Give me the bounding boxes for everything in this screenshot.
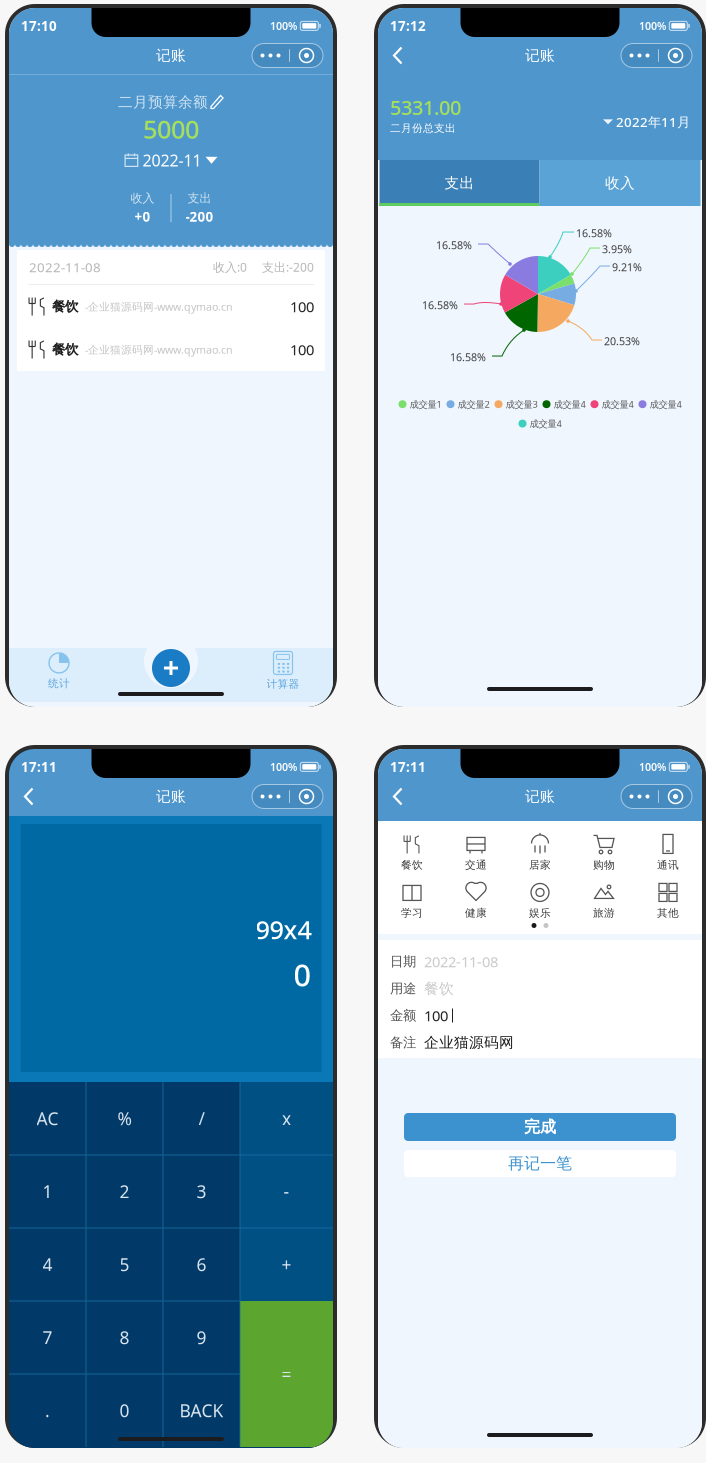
button[interactable]: 2 [86, 1155, 163, 1228]
staticText: 2022-11-08 [424, 952, 498, 971]
staticText: 17:11 [390, 758, 426, 776]
button[interactable]: Back [378, 37, 418, 74]
staticText: 成交量4 [529, 417, 561, 430]
staticText: 100 [290, 340, 314, 359]
staticText: 二月份总支出 [390, 122, 456, 135]
staticText: 收入:0 [213, 259, 247, 275]
staticText: 20.53% [604, 334, 640, 348]
staticText: -企业猫源码网-www.qymao.cn [85, 299, 233, 314]
staticText: 其他 [657, 906, 679, 919]
staticText: 成交量1 [409, 398, 441, 410]
staticText: -200 [185, 208, 213, 225]
staticText: = [281, 1362, 291, 1385]
staticText: 交通 [465, 858, 487, 871]
button[interactable]: - [240, 1155, 333, 1228]
button[interactable]: / [163, 1082, 240, 1155]
staticText: 企业猫源码网 [424, 1033, 514, 1051]
button[interactable]: 完成 [404, 1113, 676, 1141]
staticText: 购物 [593, 858, 615, 871]
button[interactable]: 居家 [508, 829, 572, 875]
button[interactable]: More options [621, 784, 692, 808]
button[interactable]: 6 [163, 1228, 240, 1301]
staticText: 计算器 [266, 677, 299, 690]
button[interactable]: 购物 [572, 829, 636, 875]
staticText: 记账 [156, 46, 186, 64]
button[interactable]: 通讯 [636, 829, 700, 875]
button[interactable]: + [240, 1228, 333, 1301]
button[interactable]: Add entry [147, 649, 195, 693]
button[interactable]: x [240, 1082, 333, 1155]
staticText: 5331.00 [390, 94, 461, 121]
staticText: 支出 [444, 174, 474, 192]
staticText: 7 [42, 1326, 52, 1349]
button[interactable]: 8 [86, 1301, 163, 1374]
button[interactable]: 9 [163, 1301, 240, 1374]
button[interactable]: 交通 [444, 829, 508, 875]
staticText: AC [36, 1107, 58, 1130]
button[interactable]: 收入 [539, 160, 700, 206]
staticText: 学习 [401, 906, 423, 919]
staticText: 成交量2 [457, 398, 489, 410]
button[interactable]: More options [252, 784, 323, 808]
staticText: - [283, 1180, 289, 1203]
staticText: 6 [196, 1253, 206, 1276]
button[interactable]: 健康 [444, 877, 508, 923]
button[interactable]: 7 [9, 1301, 86, 1374]
button[interactable]: 3 [163, 1155, 240, 1228]
button[interactable]: 再记一笔 [404, 1150, 676, 1177]
button[interactable]: 娱乐 [508, 877, 572, 923]
button[interactable]: 统计 [11, 649, 107, 693]
staticText: 2022年11月 [616, 113, 690, 131]
staticText: 3.95% [602, 242, 632, 256]
button[interactable]: 计算器 [235, 649, 331, 693]
button[interactable]: More options [621, 43, 692, 67]
button[interactable]: = [240, 1301, 333, 1447]
button[interactable]: % [86, 1082, 163, 1155]
staticText: 成交量3 [505, 398, 537, 410]
staticText: +0 [134, 208, 150, 225]
button[interactable]: AC [9, 1082, 86, 1155]
staticText: 5 [119, 1253, 129, 1276]
staticText: 用途 [390, 980, 416, 997]
staticText: + [281, 1253, 291, 1276]
button[interactable]: Back [9, 778, 49, 815]
button[interactable]: More options [252, 43, 323, 67]
staticText: 记账 [525, 46, 555, 64]
button[interactable]: 支出 [379, 160, 539, 206]
button[interactable]: BACK [163, 1374, 240, 1447]
staticText: 100 [290, 297, 314, 316]
staticText: 收入 [605, 174, 635, 192]
staticText: 日期 [390, 953, 416, 970]
staticText: BACK [179, 1399, 223, 1422]
button[interactable]: 1 [9, 1155, 86, 1228]
staticText: 100% [639, 760, 666, 774]
staticText: 居家 [529, 858, 551, 871]
button[interactable]: 餐饮 [380, 829, 444, 875]
button[interactable]: 学习 [380, 877, 444, 923]
staticText: 备注 [390, 1034, 416, 1051]
staticText: 再记一笔 [508, 1154, 572, 1173]
staticText: 9 [196, 1326, 206, 1349]
button[interactable]: Back [378, 778, 418, 815]
button[interactable]: . [9, 1374, 86, 1447]
button[interactable]: 旅游 [572, 877, 636, 923]
button[interactable]: 餐饮 [17, 285, 325, 328]
staticText: 金额 [390, 1007, 416, 1024]
staticText: 8 [119, 1326, 129, 1349]
staticText: 成交量4 [649, 398, 681, 410]
staticText: 2 [119, 1180, 129, 1203]
staticText: 17:11 [21, 758, 57, 776]
button[interactable]: 0 [86, 1374, 163, 1447]
staticText: 二月预算余额 [118, 93, 208, 111]
button[interactable]: 其他 [636, 877, 700, 923]
staticText: 16.58% [450, 350, 486, 364]
button[interactable]: 4 [9, 1228, 86, 1301]
staticText: 99x4 [255, 913, 311, 946]
button[interactable]: 5 [86, 1228, 163, 1301]
staticText: 4 [42, 1253, 52, 1276]
staticText: 完成 [524, 1117, 556, 1137]
button[interactable]: 餐饮 [17, 328, 325, 371]
staticText: 16.58% [576, 226, 612, 240]
staticText: 餐饮 [401, 858, 423, 871]
staticText: 9.21% [612, 260, 642, 274]
